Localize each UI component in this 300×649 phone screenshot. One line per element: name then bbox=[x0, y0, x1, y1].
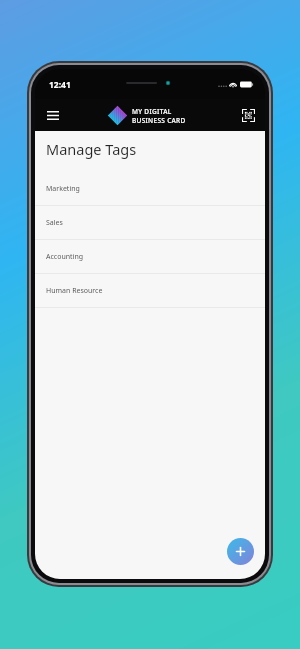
button[interactable]: Menu bbox=[44, 106, 62, 124]
staticText: Sales bbox=[46, 218, 63, 228]
button[interactable]: Human Resource bbox=[35, 274, 265, 308]
button[interactable]: Accounting bbox=[35, 240, 265, 274]
staticText: Human Resource bbox=[46, 286, 103, 296]
staticText: Manage Tags bbox=[46, 139, 137, 159]
button[interactable]: Sales bbox=[35, 206, 265, 240]
staticText: Accounting bbox=[46, 252, 84, 262]
staticText: MY DIGITAL bbox=[132, 107, 172, 116]
button[interactable]: Scan QR code bbox=[239, 106, 257, 124]
button[interactable]: Marketing bbox=[35, 172, 265, 206]
button[interactable]: Add tag bbox=[227, 538, 254, 565]
staticText: 12:41 bbox=[49, 79, 71, 91]
staticText: BUSINESS CARD bbox=[132, 116, 186, 125]
staticText: Marketing bbox=[46, 184, 80, 194]
